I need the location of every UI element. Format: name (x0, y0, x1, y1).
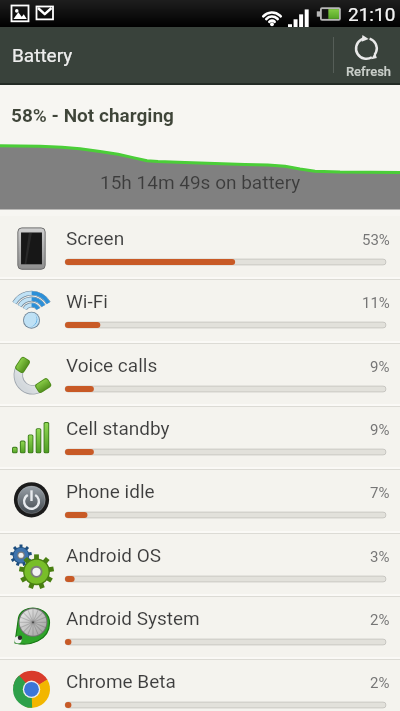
staticText: Wi-Fi (66, 290, 108, 312)
staticText: Voice calls (66, 354, 158, 376)
staticText: Android System (66, 607, 200, 629)
staticText: 58% - Not charging (11, 104, 174, 126)
button[interactable]: Chrome Beta (0, 660, 400, 711)
button[interactable]: Refresh (337, 27, 400, 85)
button[interactable]: Cell standby (0, 407, 400, 470)
staticText: 21:10 (348, 3, 396, 25)
button[interactable]: Android OS (0, 534, 400, 597)
staticText: Refresh (346, 64, 392, 79)
staticText: Battery (12, 44, 73, 66)
staticText: 3% (370, 548, 390, 566)
button[interactable]: Screen (0, 217, 400, 280)
staticText: 9% (370, 358, 390, 376)
button[interactable]: Wi-Fi (0, 280, 400, 344)
staticText: 11% (362, 294, 390, 312)
staticText: Chrome Beta (66, 670, 176, 692)
staticText: 2% (370, 674, 390, 692)
staticText: 9% (370, 421, 390, 439)
staticText: Phone idle (66, 480, 155, 502)
staticText: Android OS (66, 544, 162, 566)
staticText: 7% (370, 484, 390, 502)
staticText: Screen (66, 227, 125, 249)
button[interactable]: Android System (0, 597, 400, 660)
staticText: 53% (362, 231, 390, 249)
staticText: 2% (370, 611, 390, 629)
staticText: 15h 14m 49s on battery (100, 171, 301, 193)
button[interactable]: Phone idle (0, 470, 400, 534)
button[interactable]: Voice calls (0, 344, 400, 407)
staticText: Cell standby (66, 417, 170, 439)
